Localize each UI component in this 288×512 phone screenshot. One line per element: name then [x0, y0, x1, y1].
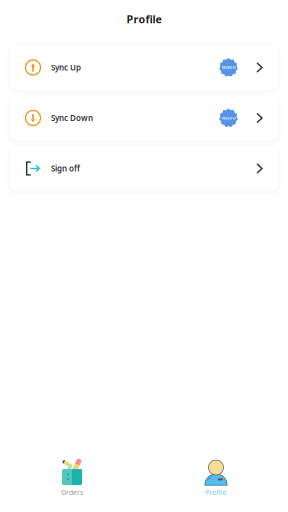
staticText: Profile [126, 12, 161, 26]
button[interactable]: Sync Up [10, 45, 278, 90]
staticText: Sync Down [51, 113, 93, 123]
staticText: Sign off [51, 163, 80, 174]
button[interactable]: Sign off [10, 146, 278, 191]
staticText: NUEVO [221, 65, 235, 70]
staticText: Profile [205, 488, 226, 497]
button[interactable]: Sync Down [10, 95, 278, 140]
staticText: Orders [61, 488, 83, 497]
button[interactable]: Orders [0, 457, 144, 512]
staticText: Sync Up [51, 62, 81, 73]
staticText: NUEVO [221, 115, 235, 121]
button[interactable]: Profile [144, 457, 288, 512]
